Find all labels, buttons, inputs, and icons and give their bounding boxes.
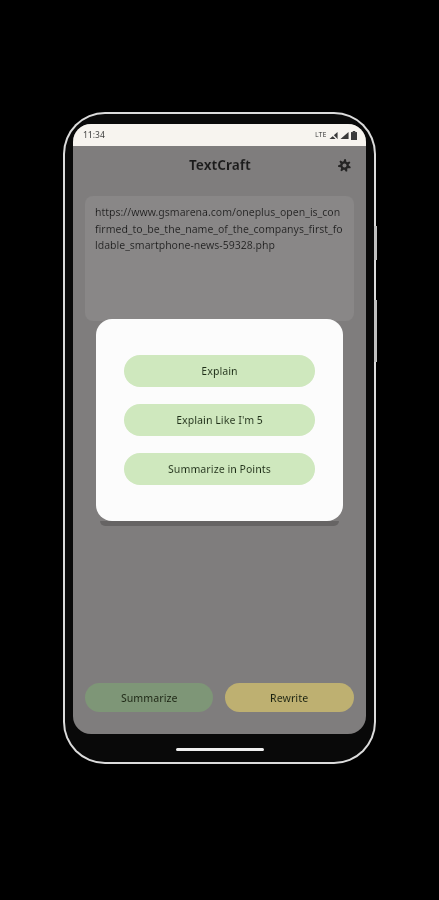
button[interactable]: Summarize in Points xyxy=(124,453,315,485)
button[interactable]: Explain Like I'm 5 xyxy=(124,404,315,436)
staticText: LTE xyxy=(315,130,327,140)
staticText: 11:34 xyxy=(83,129,105,141)
staticText: Explain Like I'm 5 xyxy=(176,413,263,427)
button[interactable]: Settings xyxy=(332,153,356,177)
button[interactable]: Rewrite xyxy=(225,683,354,712)
button[interactable]: Explain xyxy=(124,355,315,387)
staticText: Rewrite xyxy=(270,691,309,705)
button[interactable]: Summarize xyxy=(85,683,213,712)
staticText: Summarize in Points xyxy=(168,462,271,476)
staticText: TextCraft xyxy=(189,156,251,174)
staticText: Summarize xyxy=(121,691,178,705)
staticText: Explain xyxy=(201,364,238,378)
staticText: https://www.gsmarena.com/oneplus_open_is… xyxy=(95,205,344,252)
button[interactable]: https://www.gsmarena.com/oneplus_open_is… xyxy=(85,196,354,321)
